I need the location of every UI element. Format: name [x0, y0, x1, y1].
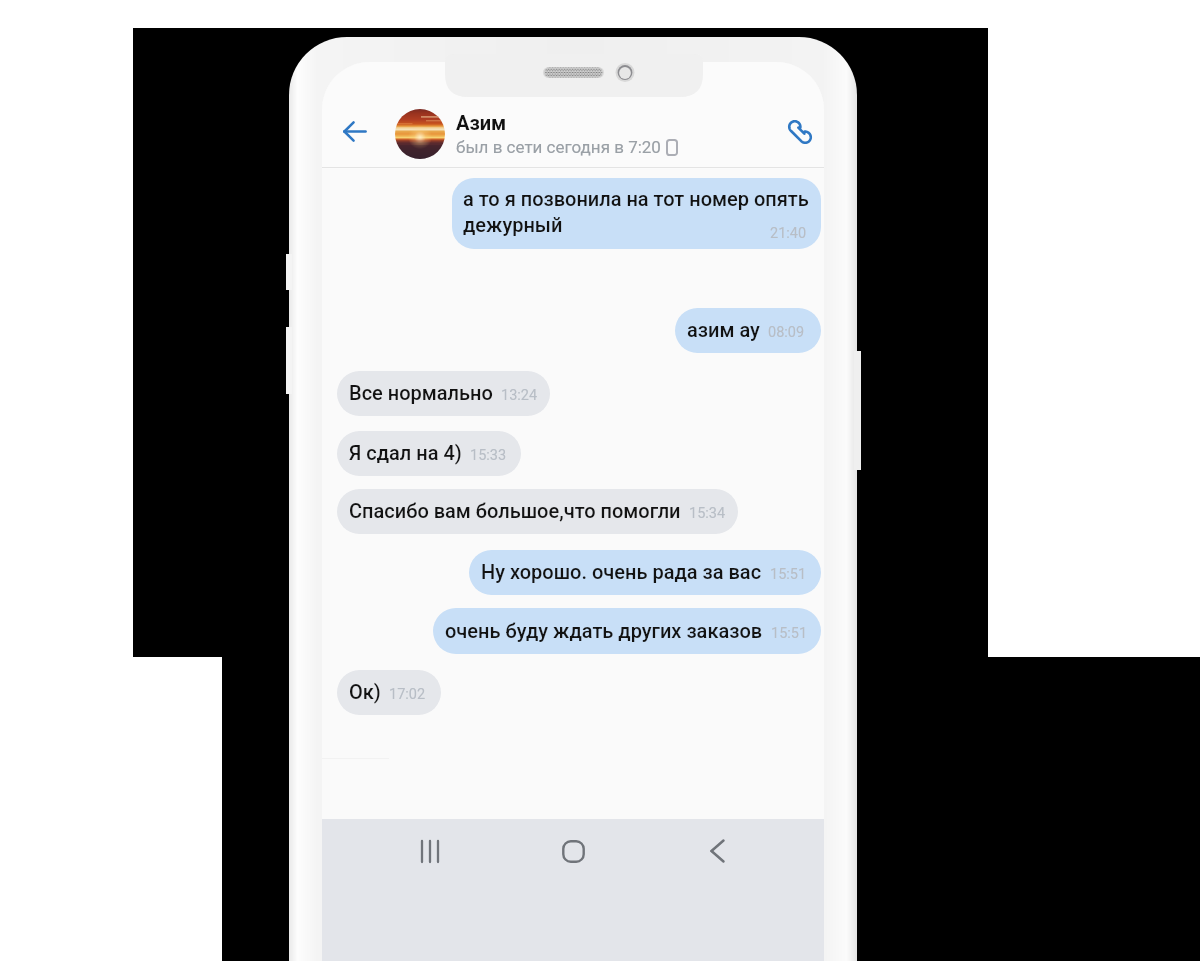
button[interactable]: Back [332, 109, 377, 154]
staticText: 15:33 [470, 447, 507, 464]
staticText: 21:40 [770, 225, 807, 242]
staticText: 15:51 [770, 566, 807, 583]
button[interactable]: Home [545, 821, 601, 881]
button[interactable]: азим ау [675, 308, 821, 353]
button[interactable]: Ну хорошо. очень рада за вас [469, 550, 821, 595]
staticText: а то я позвонила на тот номер опять дежу… [463, 187, 809, 236]
button[interactable]: а то я позвонила на тот номер опять дежу… [452, 178, 821, 249]
staticText: Азим [456, 111, 507, 134]
staticText: Спасибо вам большое,что помогли [349, 499, 681, 522]
button[interactable]: Спасибо вам большое,что помогли [337, 489, 738, 534]
staticText: азим ау [687, 318, 760, 341]
staticText: был в сети сегодня в 7:20 [456, 137, 661, 157]
button[interactable]: Все нормально [337, 371, 550, 416]
staticText: Ну хорошо. очень рада за вас [481, 560, 762, 583]
staticText: 15:34 [689, 505, 726, 522]
staticText: 15:51 [771, 625, 808, 642]
button[interactable]: Я сдал на 4) [337, 431, 521, 476]
button[interactable]: Ок) [337, 670, 441, 715]
staticText: Все нормально [349, 381, 493, 404]
staticText: 08:09 [768, 324, 805, 341]
staticText: очень буду ждать других заказов [445, 619, 763, 642]
button[interactable]: Recent apps [402, 821, 458, 881]
staticText: Ок) [349, 680, 381, 703]
button[interactable]: очень буду ждать других заказов [433, 608, 821, 654]
button[interactable]: Call [778, 110, 822, 154]
staticText: 17:02 [389, 686, 426, 703]
staticText: Я сдал на 4) [349, 441, 462, 464]
button[interactable]: Back [689, 821, 745, 881]
staticText: 13:24 [501, 387, 538, 404]
